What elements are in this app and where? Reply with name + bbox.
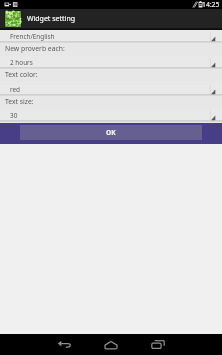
- button[interactable]: OK: [0, 123, 222, 144]
- button[interactable]: Back: [53, 334, 75, 355]
- staticText: 30: [10, 111, 18, 120]
- staticText: OK: [106, 128, 116, 137]
- staticText: Text color:: [5, 70, 38, 79]
- staticText: 2 hours: [10, 58, 33, 67]
- staticText: New proverb each:: [5, 44, 65, 53]
- staticText: red: [10, 85, 21, 94]
- button[interactable]: Recents: [147, 334, 169, 355]
- button[interactable]: Widget setting: [0, 9, 222, 30]
- staticText: French/English: [10, 32, 55, 41]
- staticText: Text size:: [5, 97, 34, 106]
- button[interactable]: Home: [100, 334, 122, 355]
- staticText: Widget setting: [27, 14, 76, 24]
- button[interactable]: 30: [0, 109, 222, 122]
- staticText: 14:25: [202, 0, 220, 9]
- button[interactable]: French/English: [0, 30, 222, 43]
- button[interactable]: 2 hours: [0, 56, 222, 69]
- button[interactable]: red: [0, 83, 222, 96]
